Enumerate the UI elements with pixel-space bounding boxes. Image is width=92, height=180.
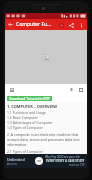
button[interactable]: Share [66,20,76,30]
staticText: Download Tutorial in PDF [9,96,50,101]
button[interactable]: More options [76,20,86,30]
staticText: read our PDF [69,163,85,167]
button[interactable]: Advertisement [5,154,87,168]
staticText: Computer Fu… [16,21,56,28]
button[interactable]: Download Tutorial in PDF [7,96,52,101]
button[interactable]: Favorite [56,20,66,30]
button[interactable]: View options [76,85,85,94]
button[interactable]: Bookmark [67,85,76,94]
staticText: Why Pay 2020 are you rich here [45,155,85,159]
button[interactable]: Navigate up [5,19,16,30]
staticText: 1.1 Functions and Usage [7,110,46,115]
staticText: Unlimited [7,157,25,162]
staticText: 2.1 Types of Computer [7,149,43,154]
staticText: 1. COMPUTER – OVERVIEW [7,104,58,109]
staticText: EVERY STORY & CASE STUDY [46,159,85,163]
staticText: 1.4 Types of Computer [7,125,43,130]
staticText: 1.3 Advantages of Computer [7,120,53,125]
staticText: 2. A computer is an electronic machine t… [7,132,85,147]
button[interactable]: Gallery [7,85,16,94]
staticText: Access [7,162,17,166]
staticText: 1.2 Basic Computer [7,115,38,120]
